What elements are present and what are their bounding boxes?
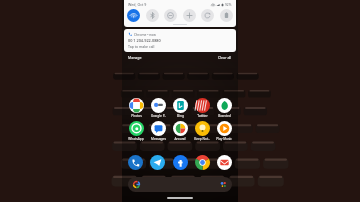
button[interactable]: Battery saver [220, 9, 233, 22]
button[interactable]: Phone [127, 154, 144, 171]
staticText: WhatsApp [128, 137, 144, 141]
button[interactable]: Gmail [216, 154, 233, 171]
staticText: Keep Not.. [194, 137, 210, 141]
button[interactable]: Telegram [149, 154, 166, 171]
staticText: 00 1 204-922-0880 [128, 38, 161, 43]
staticText: Twitter [197, 114, 208, 118]
button[interactable]: Bluetooth [146, 9, 159, 22]
button[interactable]: Do not disturb [164, 9, 177, 22]
button[interactable]: Google P.. [148, 98, 168, 118]
button[interactable]: Boosted [214, 98, 234, 118]
button[interactable]: Around [170, 121, 190, 141]
button[interactable]: Play Music [214, 121, 234, 141]
button[interactable]: Auto-rotate [201, 9, 214, 22]
button[interactable]: Chrome • now [124, 29, 236, 52]
staticText: Bing [177, 114, 184, 118]
staticText: Messages [151, 137, 166, 141]
button[interactable]: WhatsApp [126, 121, 146, 141]
staticText: Chrome • now [134, 32, 156, 36]
button[interactable]: Wed, Oct 9 [128, 2, 147, 7]
staticText: Around [174, 137, 186, 141]
button[interactable]: Keep Not.. [192, 121, 212, 141]
button[interactable]: Search [128, 177, 232, 192]
button[interactable]: Twitter [192, 98, 212, 118]
button[interactable]: Clear all [217, 54, 233, 61]
button[interactable]: Chrome [194, 154, 211, 171]
staticText: Play Music [216, 137, 232, 141]
button[interactable]: Messages [148, 121, 168, 141]
button[interactable]: Flashlight [183, 9, 196, 22]
button[interactable]: Photos [126, 98, 146, 118]
button[interactable]: Facebook [172, 154, 189, 171]
staticText: Tap to make call [128, 44, 155, 49]
button[interactable]: Manage [127, 54, 143, 61]
button[interactable]: Wi-Fi [127, 9, 140, 22]
button[interactable]: Bing [170, 98, 190, 118]
staticText: 92% [225, 3, 232, 7]
staticText: Photos [131, 114, 142, 118]
staticText: Boosted [218, 114, 231, 118]
staticText: Google P.. [151, 114, 166, 118]
